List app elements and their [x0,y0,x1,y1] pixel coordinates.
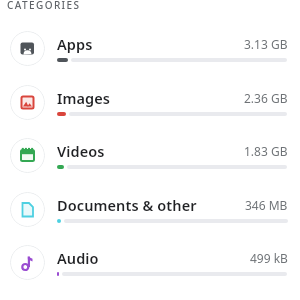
staticText: 499 kB [250,250,288,266]
staticText: 3.13 GB [244,36,288,52]
staticText: 2.36 GB [244,90,288,106]
staticText: CATEGORIES [7,0,81,12]
staticText: Images [57,88,111,108]
button[interactable]: Apps [0,21,300,75]
staticText: Apps [57,34,93,54]
button[interactable]: Images [0,75,300,129]
button[interactable]: Documents & other [0,182,300,236]
staticText: 346 MB [245,197,288,213]
staticText: 1.83 GB [244,143,288,159]
staticText: Videos [57,141,105,161]
staticText: Audio [57,248,99,268]
button[interactable]: Videos [0,128,300,182]
button[interactable]: Audio [0,235,300,289]
staticText: Documents & other [57,195,197,215]
